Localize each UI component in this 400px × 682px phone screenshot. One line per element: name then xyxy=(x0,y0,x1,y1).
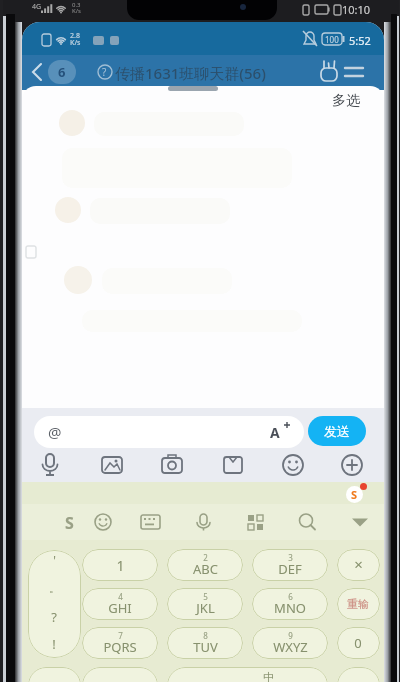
staticText: S xyxy=(65,512,74,534)
button[interactable] xyxy=(98,451,126,479)
staticText: 重输 xyxy=(347,597,369,611)
staticText: WXYZ xyxy=(273,638,308,656)
button[interactable] xyxy=(347,509,373,535)
staticText: × xyxy=(354,554,363,574)
staticText: 7 xyxy=(118,630,123,641)
staticText: 3 xyxy=(288,552,293,563)
staticText: @ xyxy=(48,422,62,442)
staticText: MNO xyxy=(274,599,306,617)
staticText: ABC xyxy=(193,560,218,578)
staticText: 4G xyxy=(32,2,42,12)
button[interactable] xyxy=(167,588,243,620)
button[interactable] xyxy=(82,627,158,659)
button[interactable] xyxy=(337,549,380,581)
button[interactable] xyxy=(340,62,368,84)
staticText: 0 xyxy=(354,634,362,652)
button[interactable] xyxy=(28,667,81,682)
button[interactable] xyxy=(158,451,186,479)
staticText: 多选 xyxy=(332,92,360,110)
button[interactable] xyxy=(167,549,243,581)
staticText: 9 xyxy=(288,630,293,641)
button[interactable] xyxy=(82,588,158,620)
staticText: 。 xyxy=(49,581,60,595)
button[interactable] xyxy=(137,509,163,535)
staticText: 100 xyxy=(325,34,339,45)
button[interactable]: 多选 xyxy=(322,90,370,112)
staticText: 6 xyxy=(58,63,66,81)
staticText: 中 xyxy=(263,670,274,682)
staticText: ? xyxy=(51,608,57,626)
button[interactable] xyxy=(27,58,51,86)
staticText: 2.8 xyxy=(70,31,80,41)
button[interactable] xyxy=(190,509,216,535)
button[interactable] xyxy=(82,549,158,581)
button[interactable] xyxy=(82,667,158,682)
staticText: 5 xyxy=(203,591,208,602)
staticText: ! xyxy=(52,635,56,653)
button[interactable]: @ xyxy=(34,416,304,448)
button[interactable]: 6 xyxy=(48,60,76,84)
button[interactable] xyxy=(252,549,328,581)
staticText: TUV xyxy=(193,638,218,656)
button[interactable] xyxy=(167,627,243,659)
button[interactable] xyxy=(337,667,380,682)
staticText: ? xyxy=(102,65,107,79)
button[interactable] xyxy=(36,451,64,479)
button[interactable] xyxy=(167,667,328,682)
button[interactable] xyxy=(295,509,321,535)
button[interactable] xyxy=(252,588,328,620)
button[interactable] xyxy=(279,451,307,479)
button[interactable] xyxy=(90,509,116,535)
staticText: JKL xyxy=(196,599,215,617)
staticText: 传播1631班聊天群(56) xyxy=(115,63,266,83)
staticText: 1 xyxy=(116,556,125,575)
staticText: K/s xyxy=(70,38,81,48)
staticText: 10:10 xyxy=(342,2,371,17)
button[interactable] xyxy=(337,627,380,659)
button[interactable] xyxy=(337,588,380,620)
staticText: 6 xyxy=(288,591,293,602)
staticText: 8 xyxy=(203,630,208,641)
staticText: 4 xyxy=(118,591,123,602)
staticText: PQRS xyxy=(103,638,137,656)
staticText: K/s xyxy=(72,7,81,15)
button[interactable] xyxy=(58,509,84,535)
staticText: ' xyxy=(53,552,56,568)
staticText: GHI xyxy=(108,599,132,617)
staticText: 2 xyxy=(203,552,208,563)
button[interactable] xyxy=(338,451,366,479)
staticText: DEF xyxy=(278,560,302,578)
button[interactable] xyxy=(242,509,268,535)
staticText: S xyxy=(351,487,358,502)
button[interactable] xyxy=(28,550,81,658)
staticText: 发送 xyxy=(324,423,350,439)
staticText: 0.3 xyxy=(72,1,81,9)
staticText: A xyxy=(270,423,280,442)
button[interactable] xyxy=(252,627,328,659)
staticText: 5:52 xyxy=(349,33,371,48)
button[interactable]: 发送 xyxy=(308,416,366,446)
button[interactable] xyxy=(219,451,247,479)
